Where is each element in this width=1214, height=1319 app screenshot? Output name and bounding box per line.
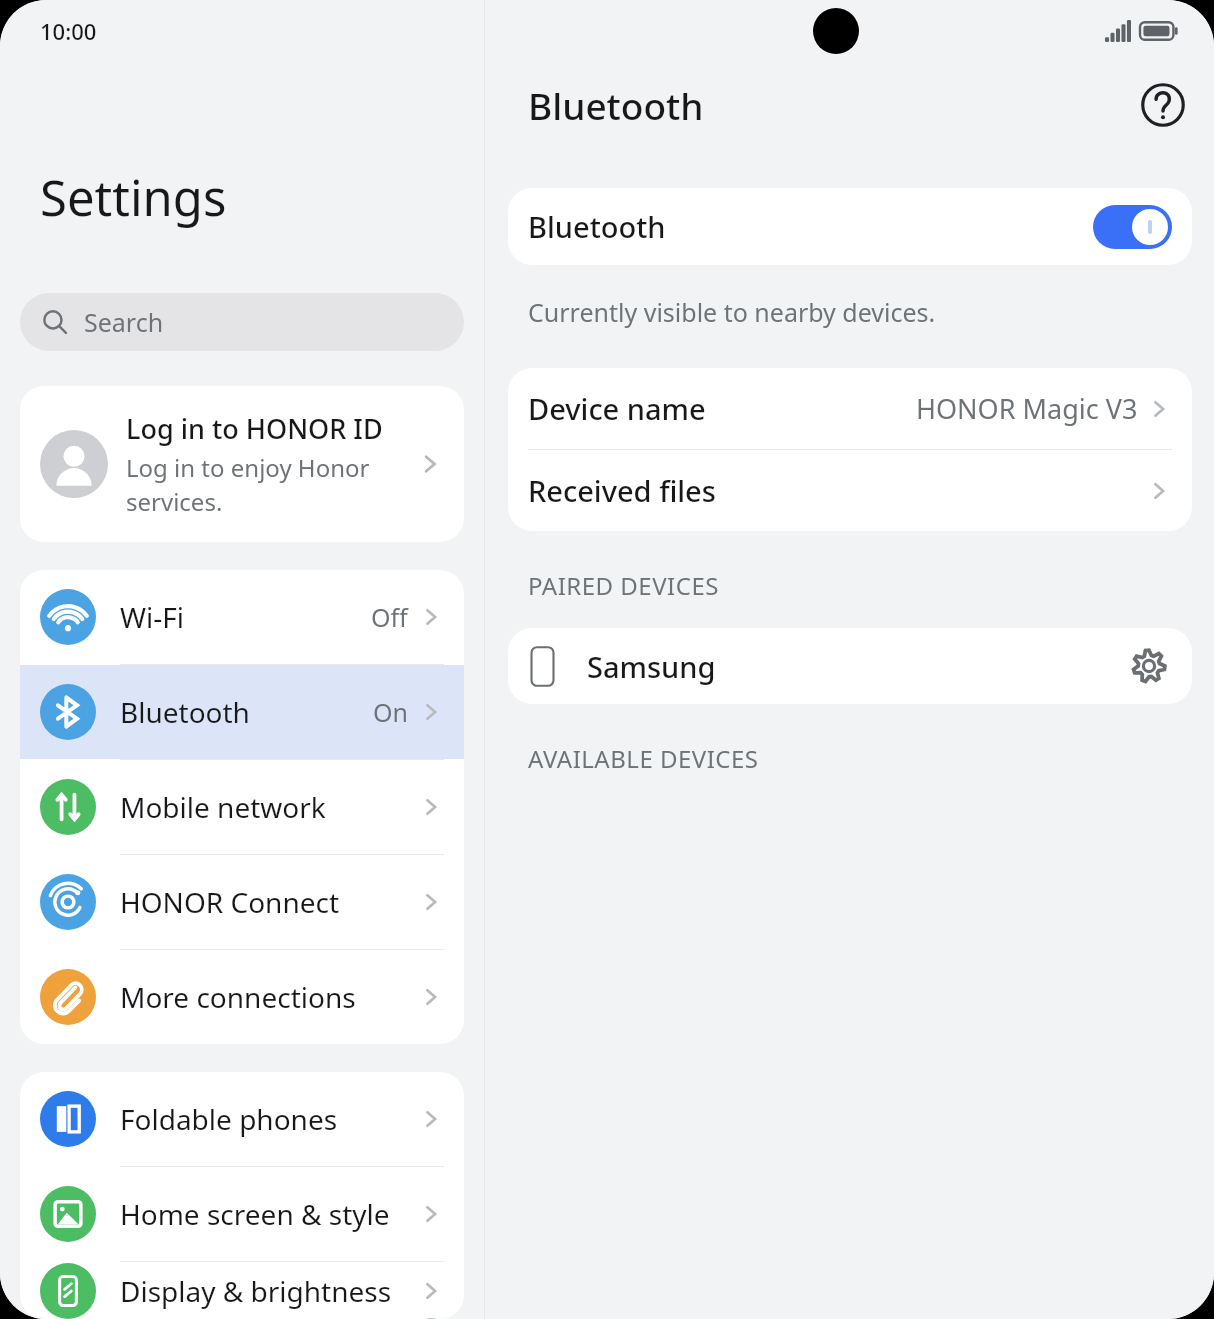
staticText: Search [84,305,164,339]
button[interactable]: Bluetooth [508,188,1192,265]
staticText: Settings [40,164,227,231]
button[interactable]: Bluetooth [20,665,464,759]
staticText: Home screen & style [120,1195,418,1233]
button[interactable]: More connections [20,950,464,1044]
button[interactable]: Mobile network [20,760,464,854]
staticText: Samsung [587,647,1126,686]
button[interactable]: Bluetooth toggle [1093,205,1172,249]
button[interactable]: Received files [508,450,1192,531]
staticText: Display & brightness [120,1272,418,1310]
staticText: Off [371,600,408,634]
staticText: Bluetooth [528,80,1134,130]
staticText: Bluetooth [528,207,1093,246]
staticText: Currently visible to nearby devices. [528,295,936,329]
staticText: Wi-Fi [120,598,371,636]
button[interactable]: Device name [508,368,1192,449]
staticText: Mobile network [120,788,418,826]
button[interactable]: Log in to HONOR ID [20,386,464,542]
button[interactable]: Foldable phones [20,1072,464,1166]
button[interactable]: Display & brightness [20,1262,464,1319]
staticText: PAIRED DEVICES [528,569,719,602]
staticText: AVAILABLE DEVICES [528,742,759,775]
button[interactable]: HONOR Connect [20,855,464,949]
button[interactable]: Wi-Fi [20,570,464,664]
button[interactable]: Search [20,293,464,351]
staticText: HONOR Connect [120,883,418,921]
staticText: Log in to HONOR ID [126,410,383,447]
button[interactable]: Help [1134,76,1192,134]
staticText: More connections [120,978,418,1016]
staticText: Log in to enjoy Honor services. [126,451,408,518]
staticText: Foldable phones [120,1100,418,1138]
button[interactable]: Home screen & style [20,1167,464,1261]
staticText: 10:00 [40,16,97,46]
staticText: HONOR Magic V3 [916,390,1138,427]
button[interactable]: Samsung [508,628,1192,704]
staticText: On [373,695,408,729]
staticText: Device name [528,389,916,428]
button[interactable]: Samsung settings [1126,643,1172,689]
staticText: Bluetooth [120,693,373,731]
staticText: Received files [528,471,1146,510]
